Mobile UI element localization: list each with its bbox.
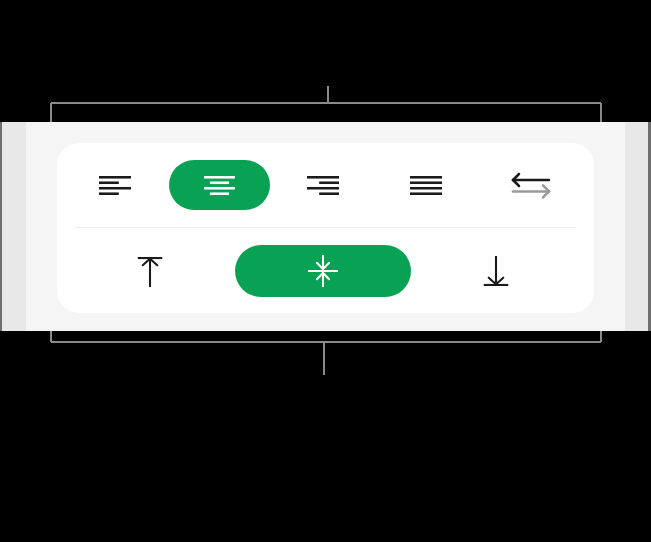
button[interactable]: Align top	[115, 245, 185, 297]
button[interactable]: Justify	[391, 160, 461, 210]
button[interactable]: Align left	[80, 160, 150, 210]
button[interactable]: Align right	[288, 160, 358, 210]
button[interactable]: Align bottom	[461, 245, 531, 297]
button[interactable]: Align middle	[235, 245, 411, 297]
button[interactable]: Align center	[169, 160, 270, 210]
button[interactable]: Text direction	[496, 160, 566, 210]
